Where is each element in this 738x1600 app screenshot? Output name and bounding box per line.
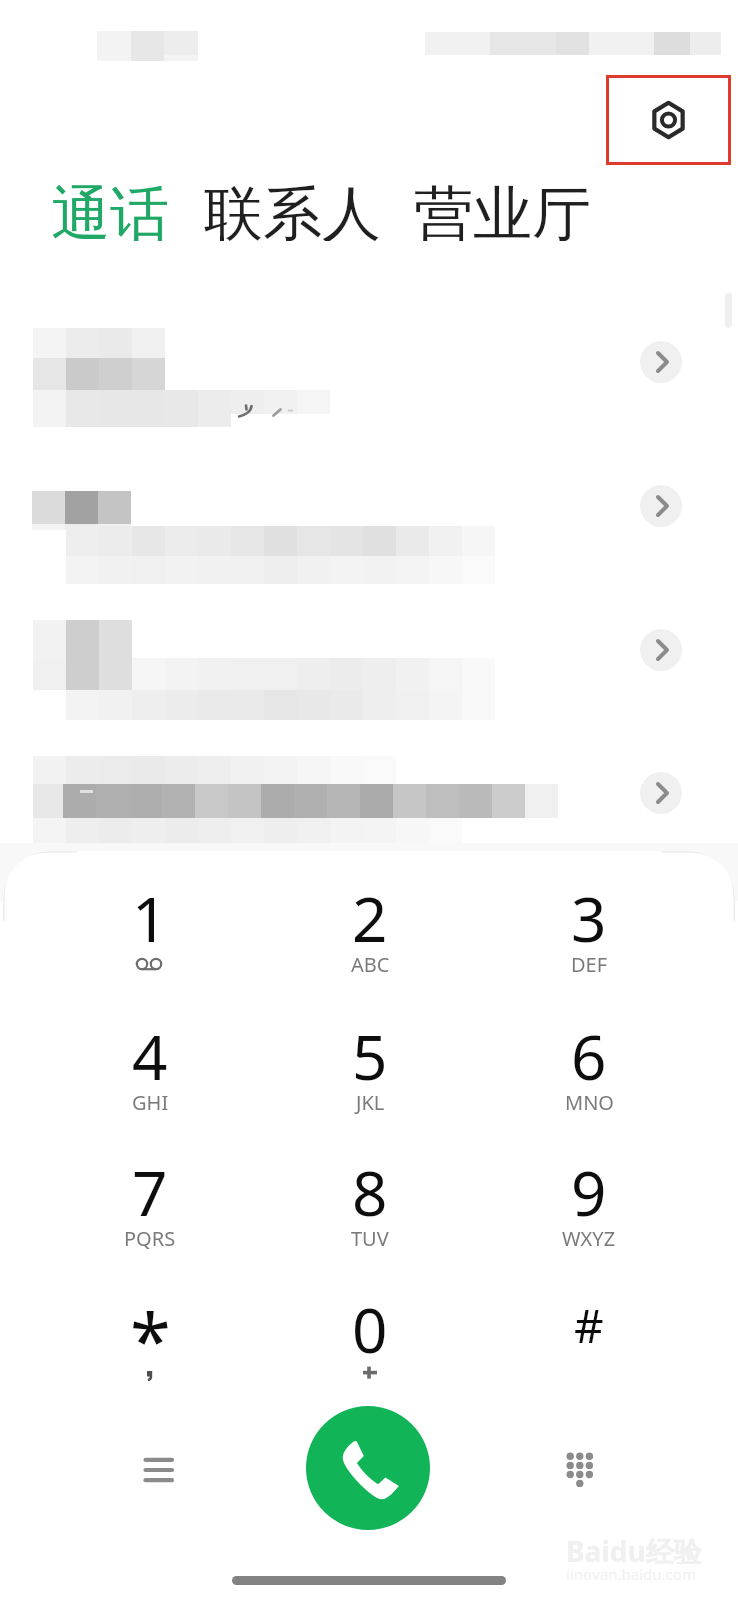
- button[interactable]: Settings: [606, 75, 731, 165]
- staticText: Baidu经验: [566, 1532, 702, 1564]
- staticText: PQRS: [124, 1225, 176, 1252]
- staticText: 6: [571, 1014, 607, 1098]
- staticText: 9: [571, 1150, 607, 1234]
- staticText: 营业厅: [414, 177, 591, 241]
- button[interactable]: Call: [306, 1406, 430, 1530]
- staticText: 联系人: [204, 177, 381, 241]
- staticText: 4: [132, 1014, 168, 1098]
- staticText: 1: [132, 876, 168, 960]
- staticText: 7: [132, 1150, 168, 1234]
- staticText: MNO: [565, 1089, 614, 1116]
- staticText: WXYZ: [562, 1225, 616, 1252]
- staticText: 通话: [51, 177, 169, 241]
- staticText: GHI: [132, 1089, 169, 1116]
- staticText: jingyan.baidu.com: [566, 1564, 696, 1580]
- staticText: TUV: [351, 1225, 389, 1252]
- button[interactable]: 营业厅: [413, 177, 591, 241]
- button[interactable]: Open: [640, 341, 682, 383]
- button[interactable]: Menu: [103, 1414, 213, 1526]
- staticText: JKL: [356, 1089, 385, 1116]
- button[interactable]: 9: [504, 1150, 674, 1280]
- staticText: DEF: [571, 951, 608, 978]
- button[interactable]: #: [504, 1294, 674, 1424]
- button[interactable]: 通话: [50, 177, 170, 241]
- button[interactable]: 6: [504, 1014, 674, 1144]
- button[interactable]: Keypad: [525, 1414, 635, 1526]
- button[interactable]: Open: [640, 629, 682, 671]
- staticText: 5: [352, 1014, 388, 1098]
- button[interactable]: 2: [285, 876, 455, 1006]
- staticText: #: [574, 1294, 604, 1357]
- staticText: 8: [352, 1150, 388, 1234]
- button[interactable]: 联系人: [203, 177, 381, 241]
- staticText: ABC: [351, 951, 390, 978]
- button[interactable]: 3: [504, 876, 674, 1006]
- button[interactable]: 7: [65, 1150, 235, 1280]
- button[interactable]: 1: [65, 876, 235, 1006]
- staticText: 3: [571, 876, 607, 960]
- staticText: 2: [352, 876, 388, 960]
- button[interactable]: Open: [640, 485, 682, 527]
- staticText: *: [130, 1289, 171, 1390]
- button[interactable]: 5: [285, 1014, 455, 1144]
- button[interactable]: Open: [640, 772, 682, 814]
- button[interactable]: 8: [285, 1150, 455, 1280]
- button[interactable]: 0: [285, 1287, 455, 1417]
- staticText: 0: [352, 1287, 388, 1371]
- button[interactable]: *: [65, 1289, 235, 1419]
- button[interactable]: 4: [65, 1014, 235, 1144]
